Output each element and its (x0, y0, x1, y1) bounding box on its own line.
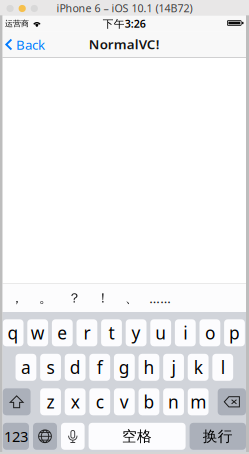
staticText: p (229, 321, 240, 344)
button[interactable]: j (163, 354, 184, 381)
button[interactable]: ！ (88, 289, 117, 307)
staticText: 换行 (203, 427, 233, 445)
button[interactable]: q (3, 319, 23, 346)
button[interactable]: …… (146, 289, 175, 307)
staticText: ！ (96, 290, 109, 306)
button[interactable]: x (65, 388, 86, 415)
button[interactable]: i (175, 319, 196, 346)
staticText: l (221, 356, 225, 379)
button[interactable]: h (138, 354, 159, 381)
button[interactable]: 空格 (89, 423, 186, 450)
button[interactable]: a (15, 354, 36, 381)
staticText: v (120, 390, 129, 413)
button[interactable]: 。 (31, 289, 60, 307)
staticText: i (183, 321, 187, 344)
button[interactable]: Delete (218, 388, 246, 415)
staticText: 下午3:26 (103, 16, 146, 31)
staticText: j (172, 356, 176, 379)
staticText: 、 (125, 290, 138, 306)
staticText: o (205, 321, 215, 344)
button[interactable]: ？ (60, 289, 88, 307)
button[interactable]: d (65, 354, 86, 381)
staticText: e (57, 321, 67, 344)
button[interactable]: v (114, 388, 135, 415)
button[interactable]: l (212, 354, 233, 381)
staticText: ， (10, 290, 23, 306)
button[interactable]: 、 (117, 289, 146, 307)
staticText: NormalVC! (89, 35, 160, 53)
staticText: 运营商 (5, 19, 29, 28)
button[interactable]: 123 (3, 423, 29, 450)
staticText: b (143, 390, 154, 413)
button[interactable]: f (89, 354, 110, 381)
staticText: f (97, 356, 103, 379)
button[interactable]: n (163, 388, 184, 415)
staticText: iPhone 6 – iOS 10.1 (14B72) (56, 1, 192, 15)
staticText: h (143, 356, 154, 379)
button[interactable]: c (89, 388, 110, 415)
button[interactable]: k (188, 354, 209, 381)
button[interactable]: ， (2, 289, 31, 307)
staticText: n (168, 390, 179, 413)
button[interactable]: g (114, 354, 135, 381)
staticText: q (8, 321, 19, 344)
staticText: z (46, 390, 54, 413)
button[interactable]: r (76, 319, 97, 346)
staticText: x (71, 390, 80, 413)
staticText: d (70, 356, 81, 379)
button[interactable]: u (150, 319, 171, 346)
button[interactable]: y (126, 319, 146, 346)
staticText: r (83, 321, 90, 344)
button[interactable]: p (224, 319, 245, 346)
staticText: y (132, 321, 141, 344)
staticText: t (108, 321, 114, 344)
button[interactable]: t (101, 319, 122, 346)
staticText: m (190, 390, 206, 413)
staticText: w (31, 321, 45, 344)
button[interactable]: Next keyboard (33, 423, 57, 450)
button[interactable]: Back (5, 33, 65, 56)
staticText: …… (149, 289, 171, 307)
button[interactable]: b (139, 388, 159, 415)
button[interactable]: s (40, 354, 61, 381)
staticText: s (46, 356, 54, 379)
staticText: g (119, 356, 130, 379)
staticText: ？ (68, 290, 81, 306)
staticText: Back (16, 36, 45, 53)
staticText: k (194, 356, 203, 379)
staticText: 空格 (122, 427, 152, 445)
staticText: c (96, 390, 104, 413)
button[interactable]: e (52, 319, 73, 346)
staticText: 。 (39, 290, 52, 306)
staticText: u (155, 321, 166, 344)
button[interactable]: o (199, 319, 220, 346)
button[interactable]: Dictation (61, 423, 85, 450)
button[interactable]: 换行 (190, 423, 246, 450)
staticText: a (21, 356, 31, 379)
button[interactable]: w (27, 319, 48, 346)
button[interactable]: Shift (3, 388, 31, 415)
button[interactable]: z (40, 388, 61, 415)
staticText: 123 (4, 427, 28, 446)
button[interactable]: m (188, 388, 209, 415)
